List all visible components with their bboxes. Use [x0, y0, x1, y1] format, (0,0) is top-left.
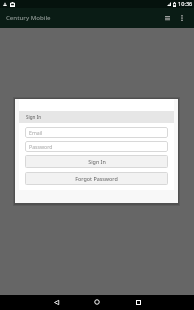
staticText: 10:36 — [178, 0, 193, 8]
staticText: Sign In — [88, 158, 106, 165]
button[interactable]: Password — [25, 141, 168, 152]
button[interactable]: Home — [90, 295, 104, 309]
staticText: Email — [29, 129, 43, 136]
button[interactable]: Back — [49, 295, 63, 309]
button[interactable]: Recent apps — [131, 295, 145, 309]
staticText: Password — [29, 143, 53, 150]
staticText: Sign In — [26, 114, 42, 120]
button[interactable]: More options — [175, 11, 189, 25]
button[interactable]: Sign In — [25, 155, 168, 168]
button[interactable]: List view — [160, 11, 174, 25]
button[interactable]: Email — [25, 127, 168, 138]
staticText: Forgot Password — [75, 175, 118, 182]
staticText: Century Mobile — [6, 13, 51, 21]
button[interactable]: Forgot Password — [25, 172, 168, 185]
